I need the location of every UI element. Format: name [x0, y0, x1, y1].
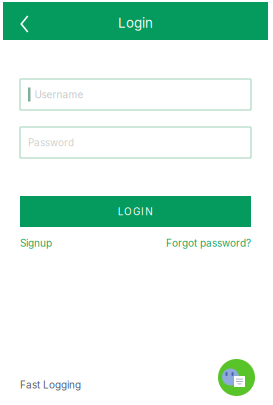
staticText: Forgot password? — [166, 237, 251, 249]
button[interactable]: Back — [3, 2, 46, 39]
button[interactable]: LOGIN — [20, 196, 251, 227]
staticText: Password — [28, 136, 74, 149]
button[interactable]: Signup — [20, 237, 52, 249]
button[interactable]: Quick log in — [218, 359, 255, 396]
staticText: Fast Logging — [20, 379, 81, 391]
staticText: LOGIN — [118, 205, 153, 218]
staticText: Signup — [20, 237, 52, 249]
staticText: Login — [118, 15, 153, 31]
button[interactable]: Forgot password? — [166, 237, 251, 249]
button[interactable]: Fast Logging — [20, 379, 81, 391]
staticText: Username — [34, 88, 83, 101]
button[interactable]: Username — [20, 79, 251, 110]
button[interactable]: Password — [20, 127, 251, 158]
